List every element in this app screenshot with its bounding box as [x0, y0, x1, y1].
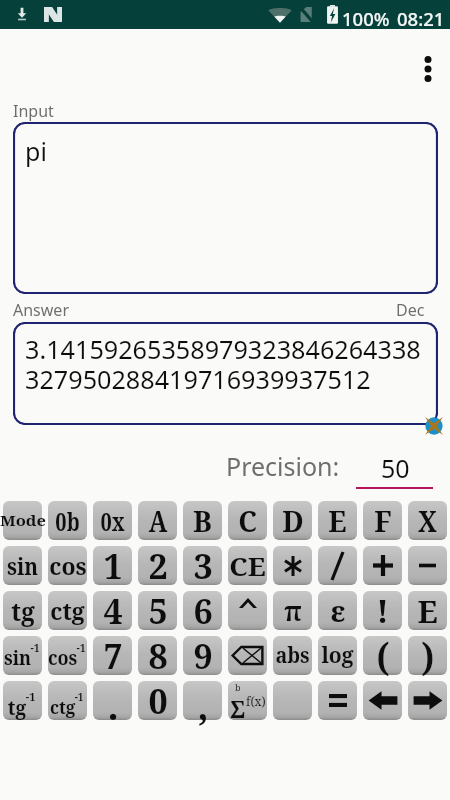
button[interactable]: 3 — [183, 546, 222, 585]
staticText: E — [417, 590, 438, 632]
staticText: F — [374, 502, 392, 540]
staticText: 08:21 — [397, 6, 445, 31]
button[interactable]: Power — [228, 591, 267, 630]
staticText: 0x — [100, 504, 125, 538]
button[interactable]: abs — [273, 636, 312, 675]
button[interactable]: Summation — [228, 681, 267, 720]
staticText: ε — [330, 591, 346, 630]
staticText: A — [148, 502, 168, 540]
button[interactable]: 3.14159265358979323846264338 32795028841… — [13, 322, 438, 425]
button[interactable]: cos — [48, 546, 87, 585]
button[interactable]: Minus — [408, 546, 447, 585]
button[interactable]: CE — [228, 546, 267, 585]
button[interactable]: Plus — [363, 546, 402, 585]
staticText: 100% — [342, 6, 390, 31]
staticText: tg — [11, 593, 35, 628]
button[interactable]: ε — [318, 591, 357, 630]
button[interactable]: 1 — [93, 546, 132, 585]
staticText: 3.14159265358979323846264338 32795028841… — [25, 332, 421, 396]
staticText: 3 — [193, 543, 213, 589]
staticText: Input — [13, 100, 54, 122]
button[interactable]: cos-1 — [48, 636, 87, 675]
button[interactable]: ctg-1 — [48, 681, 87, 720]
button[interactable]: . — [93, 681, 132, 720]
staticText: 0b — [55, 504, 80, 538]
staticText: abs — [275, 641, 310, 670]
button[interactable]: tg — [3, 591, 42, 630]
staticText: π — [284, 592, 302, 629]
button[interactable]: X — [408, 501, 447, 540]
button[interactable]: sin-1 — [3, 636, 42, 675]
staticText: Precision: — [226, 449, 340, 483]
staticText: 2 — [148, 543, 168, 589]
button[interactable]: 4 — [93, 591, 132, 630]
button[interactable]: Equals — [318, 681, 357, 720]
button[interactable]: 9 — [183, 636, 222, 675]
button[interactable]: ctg — [48, 591, 87, 630]
button[interactable]: 0x — [93, 501, 132, 540]
staticText: Mode — [0, 511, 47, 530]
staticText: 7 — [103, 633, 123, 679]
button[interactable]: ! — [363, 591, 402, 630]
staticText: CE — [229, 548, 266, 583]
staticText: Dec — [396, 299, 425, 321]
staticText: 50 — [381, 451, 410, 485]
button[interactable]: Mode — [3, 501, 42, 540]
button[interactable]: log — [318, 636, 357, 675]
staticText: -1 — [31, 640, 40, 655]
staticText: -1 — [26, 689, 36, 705]
button[interactable]: 6 — [183, 591, 222, 630]
button[interactable]: 0 — [138, 681, 177, 720]
button[interactable]: 2 — [138, 546, 177, 585]
staticText: 0 — [148, 678, 168, 724]
staticText: Answer — [13, 299, 69, 321]
button[interactable]: E — [318, 501, 357, 540]
button[interactable]: D — [273, 501, 312, 540]
staticText: E — [328, 502, 347, 540]
button[interactable]: B — [183, 501, 222, 540]
staticText: 5 — [148, 588, 168, 634]
button[interactable]: 0b — [48, 501, 87, 540]
staticText: ctg — [50, 595, 85, 626]
button[interactable]: E — [408, 591, 447, 630]
button[interactable]: F — [363, 501, 402, 540]
staticText: ( — [376, 630, 390, 682]
button[interactable]: Divide — [318, 546, 357, 585]
button[interactable]: pi — [13, 122, 438, 294]
staticText: D — [282, 502, 304, 540]
button[interactable]: π — [273, 591, 312, 630]
staticText: . — [107, 679, 119, 731]
staticText: 9 — [193, 633, 213, 679]
staticText: cos — [48, 645, 77, 671]
staticText: ctg — [50, 695, 75, 720]
button[interactable]: sin — [3, 546, 42, 585]
staticText: C — [238, 502, 257, 540]
staticText: ! — [376, 588, 389, 633]
button[interactable]: C — [228, 501, 267, 540]
button[interactable]: tg-1 — [3, 681, 42, 720]
staticText: 4 — [103, 588, 123, 634]
staticText: -1 — [75, 690, 84, 704]
button[interactable]: Move right — [408, 681, 447, 720]
button[interactable]: Move left — [363, 681, 402, 720]
button[interactable]: Blank key — [273, 681, 312, 720]
staticText: B — [193, 502, 212, 540]
button[interactable]: ) — [408, 636, 447, 675]
button[interactable]: A — [138, 501, 177, 540]
staticText: , — [197, 679, 209, 731]
staticText: tg — [8, 694, 27, 721]
button[interactable]: 5 — [138, 591, 177, 630]
button[interactable]: 7 — [93, 636, 132, 675]
staticText: 6 — [193, 588, 213, 634]
button[interactable]: , — [183, 681, 222, 720]
staticText: f(x) — [246, 693, 266, 709]
button[interactable]: More options — [406, 47, 450, 91]
button[interactable]: Multiply — [273, 546, 312, 585]
staticText: -1 — [76, 640, 86, 655]
button[interactable]: ( — [363, 636, 402, 675]
staticText: b — [235, 681, 241, 693]
button[interactable]: Backspace — [228, 636, 267, 675]
staticText: 8 — [148, 633, 168, 679]
button[interactable]: 8 — [138, 636, 177, 675]
staticText: sin — [7, 550, 38, 581]
